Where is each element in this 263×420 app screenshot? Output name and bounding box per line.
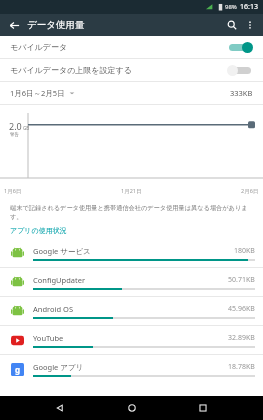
staticText: Google アプリ [33, 362, 228, 372]
staticText: Google サービス [33, 246, 234, 256]
staticText: 2.0 [9, 120, 22, 132]
staticText: 18.78KB [228, 362, 255, 372]
button[interactable]: ホーム [121, 397, 143, 419]
staticText: 警告 [10, 132, 19, 138]
staticText: 333KB [230, 88, 253, 98]
staticText: 16:13 [240, 2, 258, 12]
staticText: 1月6日 [4, 187, 22, 195]
button[interactable]: 1月6日～2月5日 [0, 82, 263, 104]
button[interactable]: 戻る [49, 397, 71, 419]
staticText: 2月6日 [241, 187, 259, 195]
staticText: 1月21日 [121, 187, 142, 195]
staticText: GB [23, 125, 30, 131]
staticText: 45.96KB [228, 304, 255, 314]
staticText: ConfigUpdater [33, 275, 228, 285]
staticText: YouTube [33, 333, 228, 343]
staticText: 50.71KB [228, 275, 255, 285]
button[interactable]: Android OS [0, 297, 263, 325]
staticText: 端末で記録されるデータ使用量と携帯通信会社のデータ使用量は異なる場合があります。 [10, 204, 253, 221]
staticText: g [15, 364, 21, 375]
staticText: モバイルデータの上限を設定する [10, 65, 227, 75]
button[interactable]: 戻る [5, 16, 23, 34]
staticText: 32.89KB [228, 333, 255, 343]
staticText: アプリの使用状況 [10, 226, 67, 235]
button[interactable]: Google サービス [0, 239, 263, 267]
button[interactable]: g [0, 355, 263, 383]
button[interactable]: その他のオプション [241, 16, 259, 34]
button[interactable]: 最近のアプリ [192, 397, 214, 419]
button[interactable]: モバイルデータの上限を設定する [0, 59, 263, 81]
staticText: Android OS [33, 304, 228, 314]
staticText: モバイルデータ [10, 42, 227, 52]
button[interactable]: 検索 [223, 16, 241, 34]
staticText: 98% [225, 3, 237, 11]
button[interactable]: モバイルデータ [0, 36, 263, 58]
button[interactable]: YouTube [0, 326, 263, 354]
staticText: 180KB [234, 246, 255, 256]
button[interactable]: ConfigUpdater [0, 268, 263, 296]
staticText: データ使用量 [27, 19, 85, 31]
staticText: 1月6日～2月5日 [10, 88, 65, 98]
